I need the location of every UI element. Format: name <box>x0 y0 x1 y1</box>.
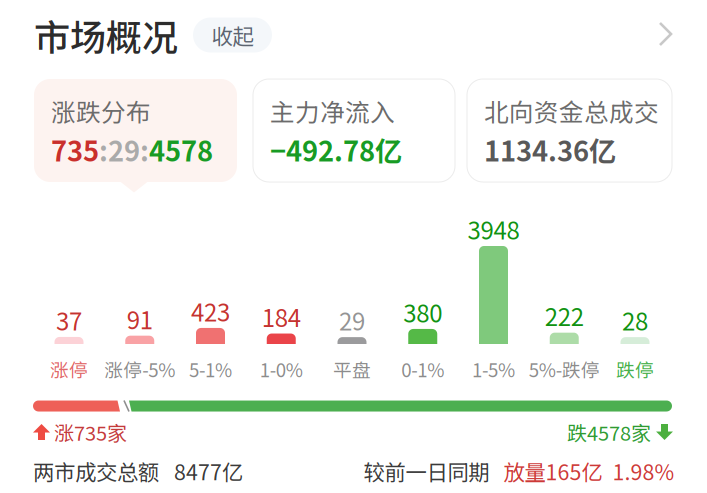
staticText: 涨停 <box>50 355 88 382</box>
button[interactable]: 查看更多 <box>648 12 684 56</box>
staticText: 1-5% <box>472 355 515 382</box>
staticText: 5-1% <box>189 355 232 382</box>
staticText: 跌4578家 <box>567 417 651 446</box>
staticText: 收起 <box>211 20 253 50</box>
staticText: 涨停-5% <box>104 355 175 382</box>
staticText: 735 <box>51 130 99 169</box>
staticText: 3948 <box>467 212 519 246</box>
staticText: 主力净流入 <box>270 93 395 129</box>
staticText: 380 <box>403 295 442 329</box>
staticText: 423 <box>191 294 230 328</box>
button[interactable]: 市场概况 <box>34 7 634 63</box>
staticText: 市场概况 <box>34 9 178 61</box>
staticText: 184 <box>262 299 301 334</box>
staticText: :29: <box>99 130 149 169</box>
staticText: 0-1% <box>401 355 444 382</box>
staticText: 91 <box>127 301 153 336</box>
staticText: 涨跌分布 <box>51 93 151 129</box>
staticText: 平盘 <box>333 355 371 382</box>
staticText: 两市成交总额 8477亿 <box>33 456 243 486</box>
staticText: 涨735家 <box>54 417 127 446</box>
staticText: 1134.36亿 <box>484 130 616 169</box>
staticText: 4578 <box>149 130 213 169</box>
staticText: 北向资金总成交 <box>484 93 659 129</box>
staticText: −492.78亿 <box>270 130 402 169</box>
staticText: 28 <box>622 303 648 338</box>
staticText: 1-0% <box>260 355 303 382</box>
staticText: 较前一日同期 <box>363 456 489 486</box>
staticText: 37 <box>56 303 82 337</box>
staticText: 29 <box>339 303 365 337</box>
staticText: 跌停 <box>616 355 654 382</box>
staticText: 5%-跌停 <box>529 355 600 382</box>
staticText: 222 <box>545 298 584 333</box>
staticText: 放量165亿 1.98% <box>503 456 674 486</box>
